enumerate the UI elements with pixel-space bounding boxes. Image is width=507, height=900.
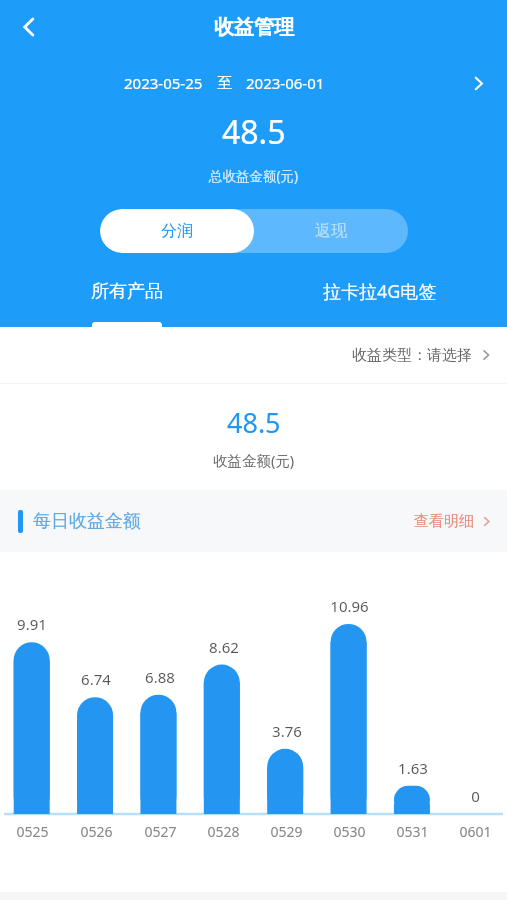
- staticText: 至: [217, 74, 232, 93]
- staticText: 收益管理: [214, 15, 294, 40]
- button[interactable]: 拉卡拉4G电签: [253, 267, 507, 327]
- button[interactable]: 查看明细: [414, 490, 507, 552]
- staticText: 10.96: [330, 596, 369, 616]
- staticText: 6.88: [145, 667, 175, 687]
- staticText: 0525: [16, 822, 49, 841]
- staticText: 0527: [144, 822, 177, 841]
- staticText: 返现: [315, 221, 347, 241]
- staticText: 0528: [207, 822, 240, 841]
- button[interactable]: 所有产品: [0, 267, 253, 327]
- staticText: 每日收益金额: [33, 510, 141, 533]
- staticText: 收益类型：请选择: [352, 346, 472, 365]
- staticText: 0526: [80, 822, 113, 841]
- staticText: 0601: [459, 822, 492, 841]
- staticText: 48.5: [227, 404, 281, 441]
- staticText: 总收益金额(元): [209, 167, 299, 185]
- staticText: 6.74: [81, 669, 111, 689]
- staticText: 1.63: [398, 758, 428, 778]
- staticText: 所有产品: [91, 280, 163, 303]
- staticText: 8.62: [209, 637, 239, 657]
- button[interactable]: 返现: [254, 209, 408, 253]
- staticText: 3.76: [272, 721, 302, 741]
- button[interactable]: Back: [6, 4, 52, 50]
- button[interactable]: 收益类型：请选择: [0, 327, 507, 383]
- staticText: 2023-05-25: [124, 73, 203, 93]
- staticText: 0: [471, 786, 480, 806]
- staticText: 0529: [270, 822, 303, 841]
- staticText: 收益金额(元): [213, 450, 295, 470]
- staticText: 48.5: [222, 110, 286, 154]
- staticText: 2023-06-01: [246, 73, 325, 93]
- staticText: 分润: [161, 221, 193, 241]
- staticText: 0531: [396, 822, 429, 841]
- staticText: 拉卡拉4G电签: [323, 279, 437, 304]
- staticText: 查看明细: [414, 512, 474, 531]
- button[interactable]: 分润: [100, 209, 254, 253]
- button[interactable]: 2023-05-25: [0, 66, 507, 100]
- staticText: 0530: [333, 822, 366, 841]
- staticText: 9.91: [17, 614, 47, 634]
